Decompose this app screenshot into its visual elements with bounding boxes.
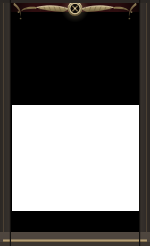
- button[interactable]: Ornate framed page: [0, 0, 150, 246]
